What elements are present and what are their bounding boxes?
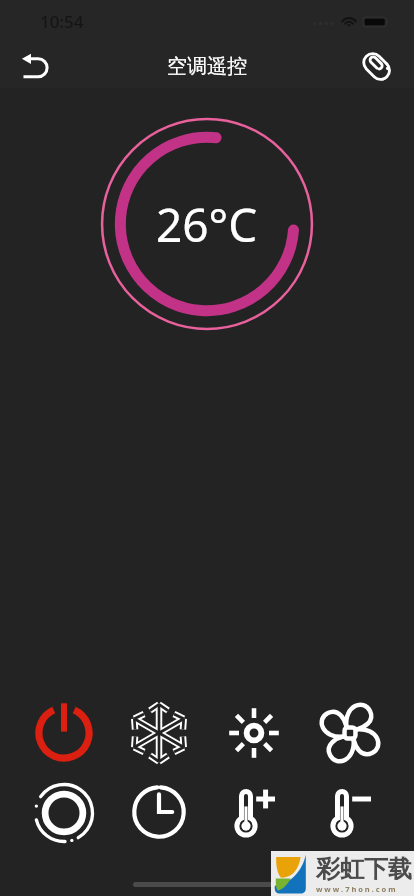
button[interactable]: Cool (111, 702, 206, 764)
staticText: w w w . 7 h o n . c o m (316, 884, 396, 894)
staticText: 空调遥控 (167, 54, 247, 79)
button[interactable]: Fan (302, 702, 398, 764)
staticText: 26°C (156, 193, 258, 256)
button[interactable]: Heat (206, 702, 302, 764)
staticText: 10:54 (40, 10, 84, 33)
button[interactable]: Temperature up (206, 781, 302, 843)
button[interactable]: Power (16, 702, 111, 764)
staticText: 彩虹下载 (316, 854, 412, 884)
button[interactable]: Attach (353, 44, 401, 88)
button[interactable]: Swing (16, 781, 111, 843)
button[interactable]: Timer (111, 781, 206, 843)
button[interactable]: Temperature down (302, 781, 398, 843)
button[interactable]: Back (11, 44, 59, 88)
